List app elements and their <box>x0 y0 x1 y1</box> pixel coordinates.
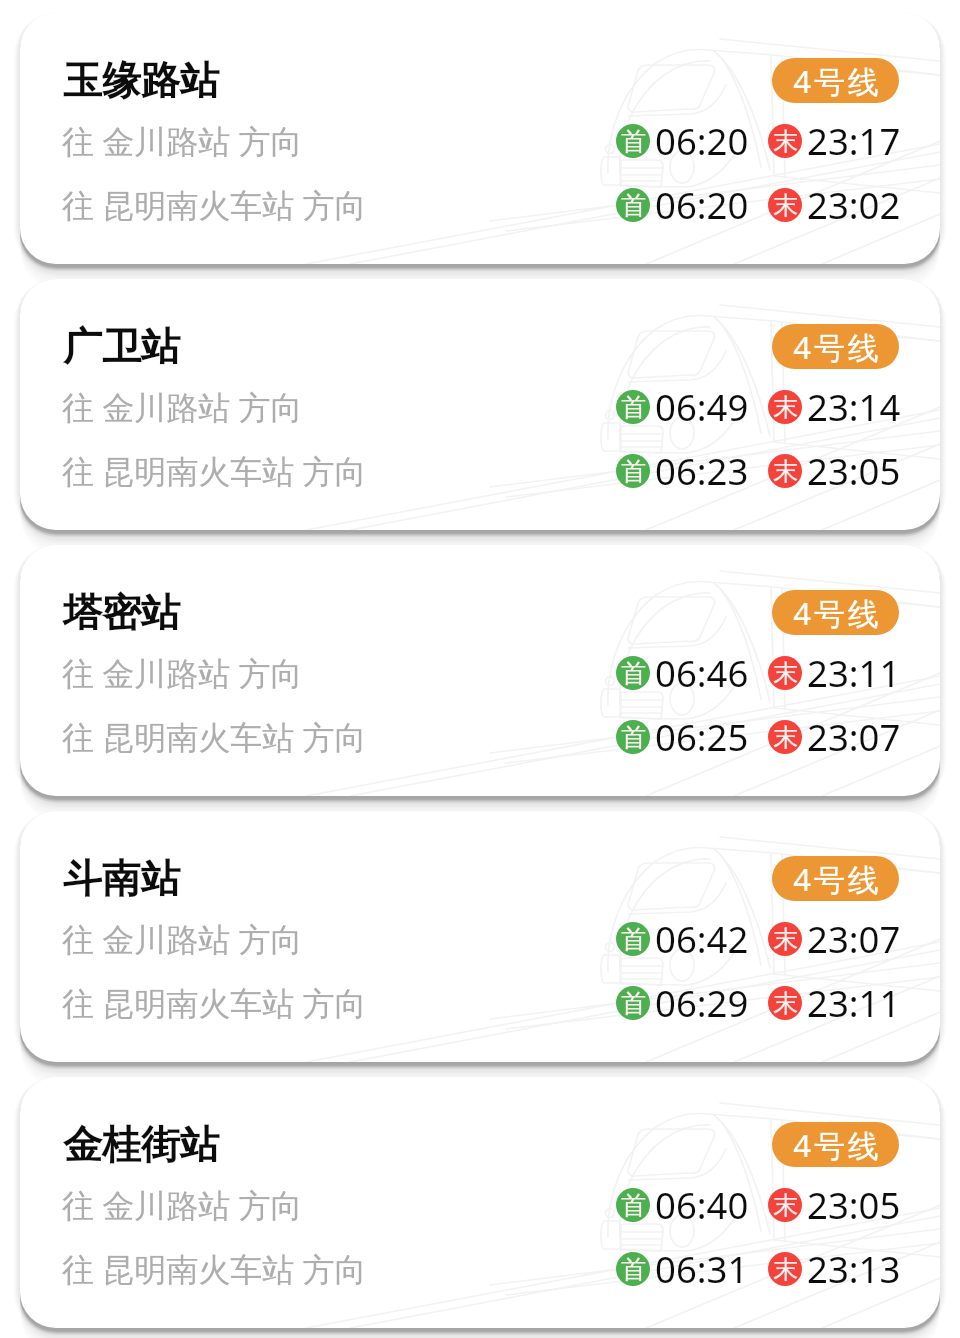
button[interactable]: 金桂街站 <box>20 1077 940 1328</box>
button[interactable]: 往 金川路站 方向 <box>20 641 940 704</box>
staticText: 末 <box>773 392 798 423</box>
staticText: 23:05 <box>807 446 901 496</box>
staticText: 23:07 <box>807 914 901 964</box>
button[interactable]: 广卫站 <box>20 279 940 530</box>
staticText: 首 <box>621 658 646 689</box>
button[interactable]: 4号线 <box>772 856 899 901</box>
staticText: 06:20 <box>655 180 749 230</box>
staticText: 末 <box>773 190 798 221</box>
staticText: 4号线 <box>793 60 882 102</box>
button[interactable]: 4号线 <box>772 58 899 103</box>
staticText: 末 <box>773 658 798 689</box>
button[interactable]: 往 金川路站 方向 <box>20 907 940 970</box>
staticText: 首 <box>621 456 646 487</box>
staticText: 首 <box>621 126 646 157</box>
staticText: 06:40 <box>655 1180 749 1230</box>
staticText: 23:11 <box>807 978 901 1028</box>
staticText: 06:46 <box>655 648 749 698</box>
staticText: 06:25 <box>655 712 749 762</box>
button[interactable]: 斗南站 <box>20 811 940 1062</box>
staticText: 末 <box>773 126 798 157</box>
staticText: 往 金川路站 方向 <box>62 119 303 163</box>
button[interactable]: 往 昆明南火车站 方向 <box>20 971 940 1034</box>
staticText: 首 <box>621 1190 646 1221</box>
staticText: 首 <box>621 924 646 955</box>
staticText: 06:20 <box>655 116 749 166</box>
staticText: 往 金川路站 方向 <box>62 1183 303 1227</box>
button[interactable]: 往 金川路站 方向 <box>20 109 940 172</box>
staticText: 06:23 <box>655 446 749 496</box>
button[interactable]: 往 昆明南火车站 方向 <box>20 705 940 768</box>
staticText: 往 昆明南火车站 方向 <box>62 715 367 759</box>
button[interactable]: 往 昆明南火车站 方向 <box>20 173 940 236</box>
staticText: 23:17 <box>807 116 901 166</box>
staticText: 往 金川路站 方向 <box>62 385 303 429</box>
button[interactable]: 4号线 <box>772 1122 899 1167</box>
button[interactable]: 4号线 <box>772 590 899 635</box>
staticText: 23:11 <box>807 648 901 698</box>
button[interactable]: 塔密站 <box>20 545 940 796</box>
staticText: 末 <box>773 722 798 753</box>
staticText: 末 <box>773 456 798 487</box>
button[interactable]: 玉缘路站 <box>20 13 940 264</box>
staticText: 往 金川路站 方向 <box>62 651 303 695</box>
staticText: 塔密站 <box>63 588 180 637</box>
staticText: 06:49 <box>655 382 749 432</box>
staticText: 4号线 <box>793 326 882 368</box>
button[interactable]: 往 昆明南火车站 方向 <box>20 1237 940 1300</box>
staticText: 23:02 <box>807 180 901 230</box>
staticText: 往 金川路站 方向 <box>62 917 303 961</box>
staticText: 23:07 <box>807 712 901 762</box>
staticText: 4号线 <box>793 592 882 634</box>
button[interactable]: 往 昆明南火车站 方向 <box>20 439 940 502</box>
staticText: 金桂街站 <box>63 1120 219 1169</box>
staticText: 末 <box>773 924 798 955</box>
staticText: 06:42 <box>655 914 749 964</box>
staticText: 4号线 <box>793 858 882 900</box>
staticText: 广卫站 <box>63 322 180 371</box>
staticText: 23:13 <box>807 1244 901 1294</box>
staticText: 往 昆明南火车站 方向 <box>62 1247 367 1291</box>
staticText: 06:29 <box>655 978 749 1028</box>
staticText: 往 昆明南火车站 方向 <box>62 183 367 227</box>
staticText: 末 <box>773 988 798 1019</box>
staticText: 斗南站 <box>63 854 180 903</box>
button[interactable]: 往 金川路站 方向 <box>20 1173 940 1236</box>
staticText: 末 <box>773 1190 798 1221</box>
button[interactable]: 4号线 <box>772 324 899 369</box>
button[interactable]: 往 金川路站 方向 <box>20 375 940 438</box>
staticText: 首 <box>621 722 646 753</box>
staticText: 06:31 <box>655 1244 749 1294</box>
staticText: 玉缘路站 <box>63 56 219 105</box>
staticText: 首 <box>621 1254 646 1285</box>
staticText: 4号线 <box>793 1124 882 1166</box>
staticText: 23:14 <box>807 382 901 432</box>
staticText: 末 <box>773 1254 798 1285</box>
staticText: 往 昆明南火车站 方向 <box>62 449 367 493</box>
staticText: 首 <box>621 988 646 1019</box>
staticText: 首 <box>621 392 646 423</box>
staticText: 往 昆明南火车站 方向 <box>62 981 367 1025</box>
staticText: 首 <box>621 190 646 221</box>
staticText: 23:05 <box>807 1180 901 1230</box>
